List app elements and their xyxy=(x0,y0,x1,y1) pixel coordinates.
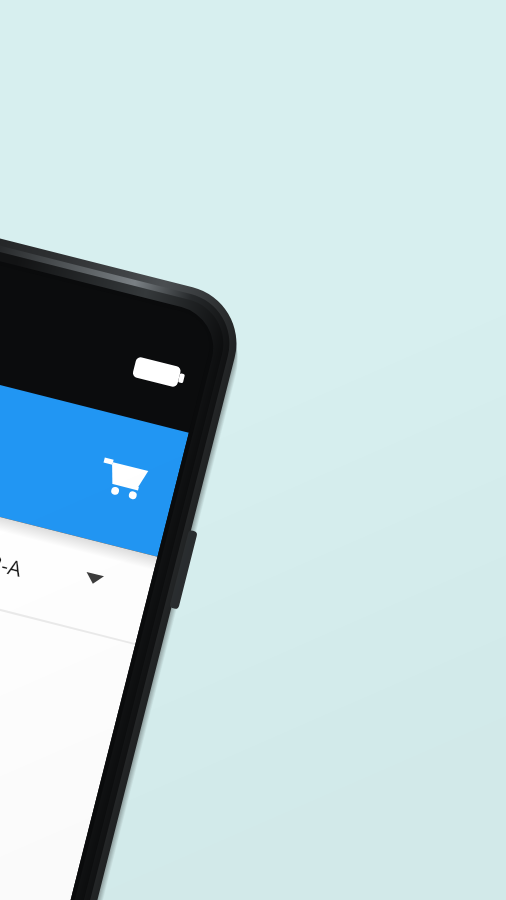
button[interactable]: Phone showing shop app xyxy=(0,0,506,900)
